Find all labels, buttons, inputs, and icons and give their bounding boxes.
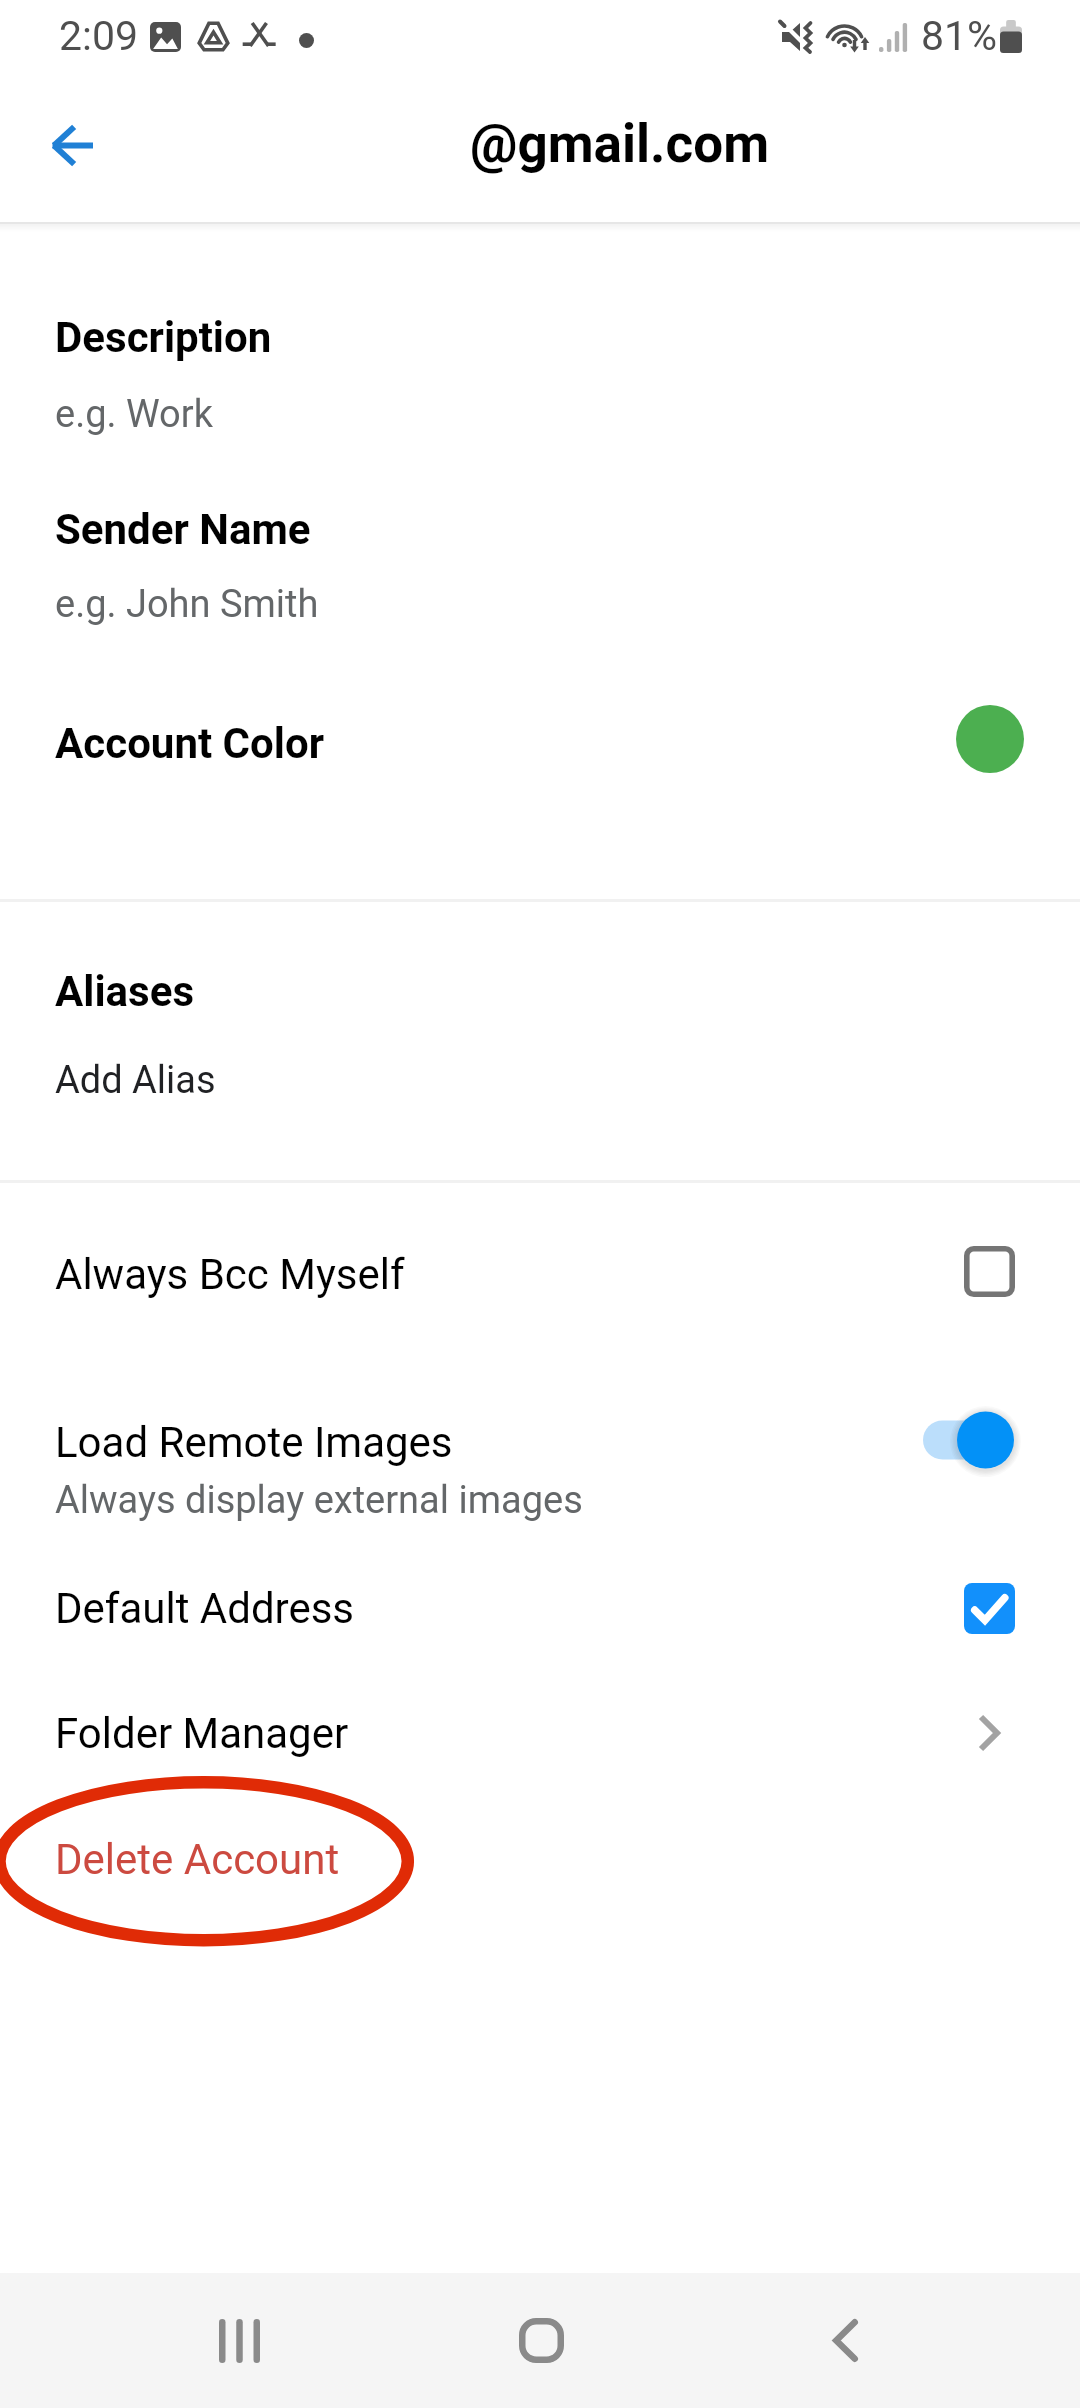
staticText: 2:09: [59, 12, 139, 60]
button[interactable]: Default Address: [0, 1556, 1080, 1672]
button[interactable]: e.g. Work: [0, 384, 1080, 454]
button[interactable]: Folder Manager: [0, 1681, 1080, 1797]
staticText: Add Alias: [55, 1058, 216, 1103]
button[interactable]: Sender Name: [0, 497, 1080, 569]
staticText: Aliases: [55, 967, 195, 1016]
staticText: Folder Manager: [55, 1709, 349, 1758]
staticText: Account Color: [55, 719, 325, 768]
staticText: Description: [55, 313, 272, 362]
staticText: Sender Name: [55, 505, 311, 554]
button[interactable]: Navigate up: [30, 103, 114, 187]
button[interactable]: Always Bcc Myself: [0, 1217, 1080, 1337]
staticText: Always display external images: [55, 1478, 583, 1523]
staticText: Always Bcc Myself: [55, 1250, 405, 1299]
staticText: @gmail.com: [470, 113, 770, 175]
button[interactable]: Account Color: [0, 698, 1080, 794]
staticText: Load Remote Images: [55, 1418, 453, 1467]
button[interactable]: Load Remote Images: [0, 1393, 1080, 1543]
button[interactable]: Delete Account: [0, 1807, 1080, 1917]
button[interactable]: Home: [479, 2273, 603, 2408]
staticText: e.g. Work: [55, 392, 213, 437]
staticText: 81%: [921, 12, 998, 60]
staticText: Default Address: [55, 1584, 355, 1633]
button[interactable]: Description: [0, 305, 1080, 377]
button[interactable]: Back: [783, 2273, 907, 2408]
button[interactable]: e.g. John Smith: [0, 574, 1080, 644]
staticText: Delete Account: [55, 1835, 340, 1884]
button[interactable]: Recent apps: [177, 2273, 301, 2408]
button[interactable]: Aliases: [0, 959, 1080, 1031]
staticText: e.g. John Smith: [55, 582, 319, 627]
button[interactable]: Add Alias: [0, 1050, 1080, 1120]
